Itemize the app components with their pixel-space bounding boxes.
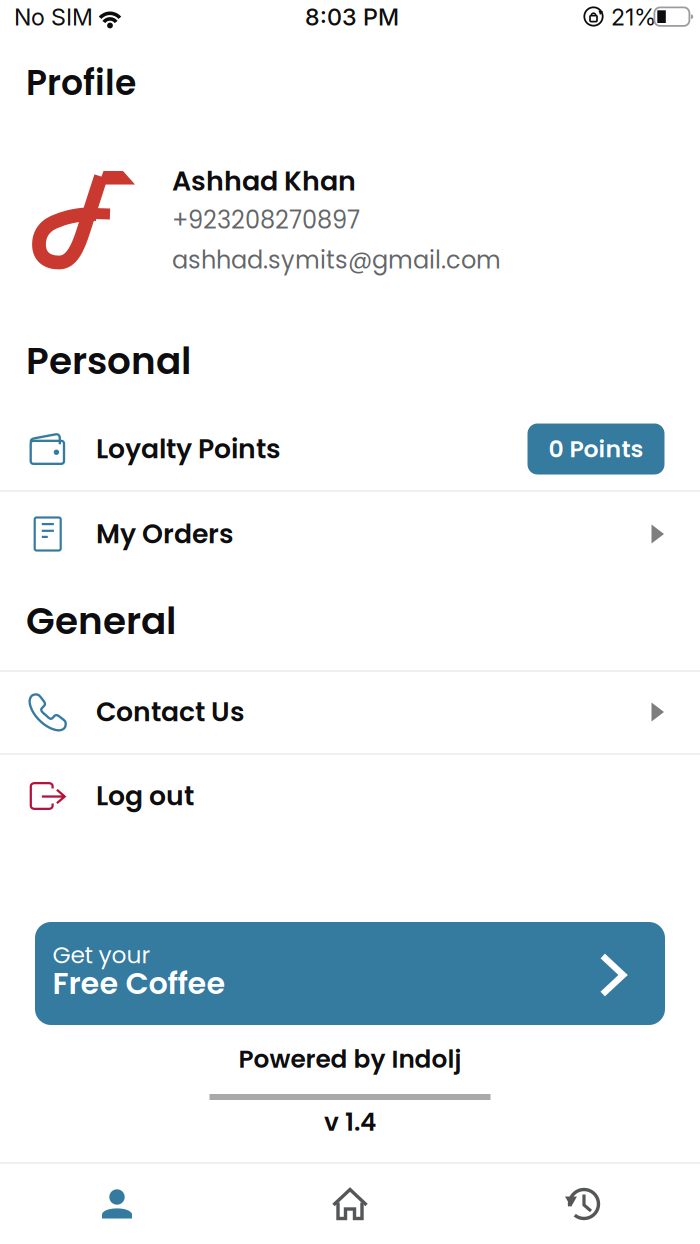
staticText: No SIM	[14, 3, 93, 31]
button[interactable]: Get your	[35, 922, 665, 1025]
staticText: My Orders	[96, 515, 234, 553]
button[interactable]: Contact Us	[0, 672, 700, 752]
button[interactable]: Home	[233, 1164, 466, 1244]
staticText: +923208270897	[172, 203, 360, 237]
staticText: Log out	[96, 777, 194, 815]
staticText: 0 Points	[548, 432, 643, 465]
staticText: Personal	[26, 335, 191, 387]
staticText: Powered by Indolj	[238, 1042, 461, 1076]
button[interactable]: My Orders	[0, 494, 700, 574]
staticText: v 1.4	[324, 1105, 376, 1139]
staticText: Get your	[53, 939, 151, 972]
staticText: ashhad.symits@gmail.com	[172, 243, 501, 277]
staticText: Loyalty Points	[96, 430, 281, 468]
staticText: Ashhad Khan	[172, 162, 356, 200]
staticText: General	[26, 595, 176, 647]
staticText: 21%	[611, 3, 656, 31]
staticText: 8:03 PM	[305, 3, 399, 31]
button[interactable]: Profile	[0, 1164, 233, 1244]
button[interactable]: Log out	[0, 756, 700, 836]
button[interactable]: Order history	[466, 1164, 699, 1244]
staticText: Free Coffee	[53, 962, 226, 1005]
staticText: Profile	[26, 59, 136, 107]
staticText: Contact Us	[96, 693, 245, 731]
button[interactable]: Loyalty Points	[0, 402, 700, 496]
